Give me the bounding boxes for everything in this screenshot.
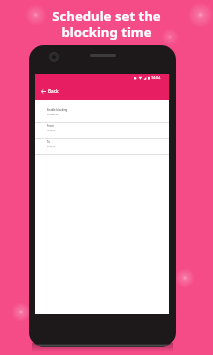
button[interactable]: From xyxy=(35,123,169,139)
staticText: To xyxy=(47,140,50,144)
staticText: 10:00 PM xyxy=(47,129,56,132)
button[interactable]: Back xyxy=(35,85,63,97)
staticText: From xyxy=(47,124,54,128)
staticText: Currently On xyxy=(47,113,59,116)
staticText: Enable blocking xyxy=(47,108,68,112)
staticText: Schedule set the xyxy=(52,7,161,25)
staticText: 07:00 AM xyxy=(47,145,56,148)
staticText: Back xyxy=(48,88,59,94)
button[interactable]: To xyxy=(35,139,169,155)
button[interactable]: Enable blocking xyxy=(35,107,169,123)
staticText: blocking time xyxy=(61,23,152,41)
staticText: 14:04 xyxy=(151,75,161,80)
